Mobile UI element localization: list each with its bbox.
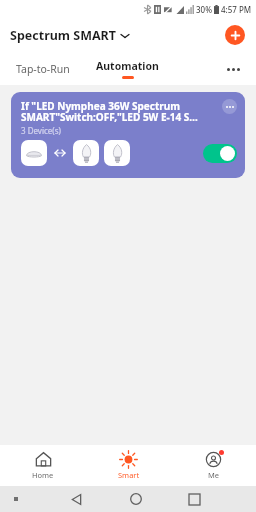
button[interactable]: If "LED Nymphea 36W Spectrum SMART"Switc… <box>11 92 245 178</box>
button[interactable]: Me <box>171 445 256 486</box>
button[interactable]: More options <box>222 58 244 80</box>
staticText: 30% <box>196 4 212 15</box>
staticText: 4:57 PM <box>221 4 252 15</box>
staticText: Tap-to-Run <box>16 62 70 76</box>
button[interactable]: Add <box>225 25 245 45</box>
staticText: If "LED Nymphea 36W Spectrum SMART"Switc… <box>21 99 218 124</box>
staticText: Me <box>208 470 220 480</box>
button[interactable]: Tap-to-Run <box>14 58 72 80</box>
button[interactable]: Automation options <box>222 99 237 114</box>
staticText: Home <box>32 470 54 480</box>
button[interactable]: Automation <box>94 59 161 79</box>
button[interactable]: Recent apps <box>165 486 224 512</box>
staticText: 3 Device(s) <box>21 125 61 136</box>
staticText: Spectrum SMART <box>10 27 117 44</box>
staticText: Smart <box>118 470 140 480</box>
button[interactable]: Automation enabled <box>203 144 237 163</box>
button[interactable]: Home <box>106 486 165 512</box>
button[interactable]: Spectrum SMART <box>10 27 129 44</box>
staticText: Automation <box>96 59 159 73</box>
button[interactable]: Smart <box>86 445 171 486</box>
button[interactable]: Home <box>0 445 86 486</box>
button[interactable]: Back <box>47 486 106 512</box>
